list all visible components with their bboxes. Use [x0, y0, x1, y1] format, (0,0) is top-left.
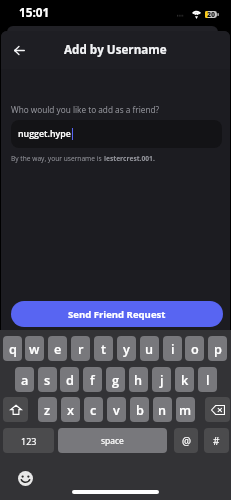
staticText: f	[90, 371, 95, 388]
staticText: By the way, your username is	[11, 154, 104, 163]
button[interactable]: h	[129, 367, 148, 392]
button[interactable]: #	[204, 428, 229, 453]
button[interactable]: c	[84, 397, 103, 422]
button[interactable]: b	[130, 397, 149, 422]
staticText: a	[21, 371, 29, 388]
button[interactable]: w	[25, 336, 44, 361]
staticText: z	[44, 401, 51, 418]
staticText: h	[134, 371, 143, 388]
button[interactable]: k	[175, 367, 194, 392]
button[interactable]: v	[107, 397, 126, 422]
staticText: 20	[207, 10, 216, 20]
staticText: p	[214, 340, 222, 357]
staticText: e	[54, 340, 62, 357]
staticText: r	[78, 340, 84, 357]
button[interactable]: y	[117, 336, 136, 361]
button[interactable]: f	[83, 367, 102, 392]
button[interactable]: s	[38, 367, 57, 392]
button[interactable]: Emoji	[17, 470, 33, 486]
button[interactable]: g	[106, 367, 125, 392]
staticText: t	[101, 340, 107, 357]
staticText: v	[113, 401, 120, 418]
button[interactable]: 123	[3, 428, 54, 453]
button[interactable]: r	[71, 336, 90, 361]
button[interactable]: x	[61, 397, 80, 422]
staticText: o	[191, 340, 199, 357]
button[interactable]: space	[58, 428, 167, 453]
staticText: space	[101, 435, 124, 447]
staticText: #	[213, 434, 220, 448]
staticText: g	[112, 371, 120, 388]
staticText: q	[9, 340, 17, 357]
button[interactable]: j	[152, 367, 171, 392]
button[interactable]: @	[174, 428, 198, 453]
button[interactable]: n	[153, 397, 172, 422]
staticText: n	[158, 401, 167, 418]
staticText: i	[171, 340, 175, 357]
staticText: y	[123, 340, 130, 357]
staticText: u	[145, 340, 154, 357]
staticText: c	[90, 401, 97, 418]
staticText: k	[181, 371, 189, 388]
button[interactable]: nugget.hype	[11, 120, 222, 148]
staticText: l	[206, 371, 210, 388]
button[interactable]: d	[60, 367, 79, 392]
button[interactable]: Send Friend Request	[11, 301, 223, 327]
button[interactable]: t	[94, 336, 113, 361]
staticText: 15:01	[19, 4, 50, 20]
button[interactable]: i	[163, 336, 182, 361]
staticText: x	[67, 401, 74, 418]
button[interactable]: Shift	[3, 397, 28, 422]
button[interactable]: u	[140, 336, 159, 361]
staticText: Who would you like to add as a friend?	[11, 104, 160, 115]
staticText: @	[182, 434, 191, 448]
staticText: 123	[21, 435, 37, 447]
staticText: Add by Username	[64, 42, 167, 58]
staticText: j	[160, 371, 164, 388]
button[interactable]: a	[15, 367, 34, 392]
staticText: s	[44, 371, 51, 388]
button[interactable]: Backspace	[205, 397, 230, 422]
staticText: d	[66, 371, 74, 388]
button[interactable]: Back	[5, 36, 33, 64]
staticText: nugget.hype	[18, 128, 71, 140]
button[interactable]: e	[48, 336, 67, 361]
button[interactable]: o	[185, 336, 204, 361]
button[interactable]: l	[198, 367, 217, 392]
staticText: w	[29, 340, 40, 357]
button[interactable]: m	[176, 397, 195, 422]
staticText: lestercrest.001.	[104, 154, 155, 163]
button[interactable]: q	[3, 336, 22, 361]
button[interactable]: p	[208, 336, 227, 361]
staticText: m	[179, 401, 192, 418]
staticText: b	[136, 401, 144, 418]
staticText: Send Friend Request	[68, 308, 166, 321]
button[interactable]: z	[38, 397, 57, 422]
